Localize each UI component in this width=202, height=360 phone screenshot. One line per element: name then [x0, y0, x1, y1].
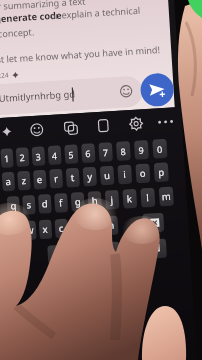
button[interactable] [0, 0, 202, 360]
